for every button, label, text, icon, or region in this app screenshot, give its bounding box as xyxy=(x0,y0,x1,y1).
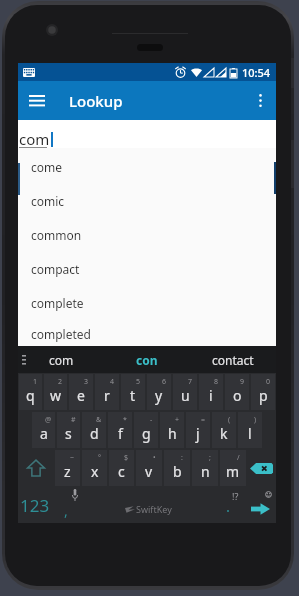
button[interactable]: contact xyxy=(190,346,276,373)
button[interactable]: 8 xyxy=(199,374,223,410)
staticText: 6 xyxy=(162,377,167,387)
staticText: !? xyxy=(232,490,239,502)
staticText: f xyxy=(118,424,123,443)
staticText: 9 xyxy=(240,377,245,387)
button[interactable]: 9 xyxy=(225,374,249,410)
button[interactable]: # xyxy=(57,412,80,448)
button[interactable]: $ xyxy=(109,450,134,486)
button[interactable]: 7 xyxy=(173,374,197,410)
button[interactable]: Backspace xyxy=(247,450,276,486)
staticText: compact xyxy=(31,261,80,277)
button[interactable]: common xyxy=(18,218,276,252)
staticText: 2 xyxy=(58,377,63,387)
staticText: come xyxy=(31,159,63,175)
staticText: con xyxy=(136,352,158,368)
button[interactable]: 123 xyxy=(18,488,62,523)
staticText: r xyxy=(104,386,110,405)
staticText: 3 xyxy=(84,377,89,387)
button[interactable]: con xyxy=(104,346,190,373)
staticText: t xyxy=(130,386,136,405)
staticText: v xyxy=(145,462,153,481)
staticText: c xyxy=(118,462,125,481)
button[interactable]: complete xyxy=(18,286,276,320)
button[interactable]: @ xyxy=(32,412,55,448)
staticText: k xyxy=(220,424,228,443)
staticText: contact xyxy=(212,352,254,368)
button[interactable]: 6 xyxy=(147,374,171,410)
staticText: p xyxy=(259,386,268,405)
staticText: com xyxy=(49,352,74,368)
button[interactable]: 5 xyxy=(121,374,145,410)
button[interactable]: comic xyxy=(18,184,276,218)
staticText: n xyxy=(201,462,210,481)
staticText: h xyxy=(168,424,177,443)
staticText: q xyxy=(26,386,35,405)
staticText: ~ xyxy=(70,453,75,463)
staticText: l xyxy=(248,424,252,443)
staticText: 1 xyxy=(33,377,38,387)
staticText: 0 xyxy=(266,377,271,387)
staticText: m xyxy=(226,462,240,481)
staticText: $ xyxy=(124,453,129,463)
button[interactable]: Punctuation xyxy=(214,488,248,523)
staticText: w xyxy=(50,386,62,405)
button[interactable]: 0 xyxy=(251,374,275,410)
button[interactable]: 1 xyxy=(19,374,42,410)
button[interactable]: & xyxy=(82,412,106,448)
button[interactable]: Keyboard menu xyxy=(18,346,29,373)
staticText: : xyxy=(181,453,183,463)
button[interactable]: 3 xyxy=(69,374,93,410)
staticText: 8 xyxy=(214,377,219,387)
staticText: 5 xyxy=(136,377,141,387)
staticText: # xyxy=(71,415,76,425)
button[interactable]: More options xyxy=(244,81,276,120)
staticText: e xyxy=(77,386,85,405)
staticText: y xyxy=(155,386,163,405)
button[interactable]: - xyxy=(134,412,158,448)
button[interactable]: + xyxy=(160,412,184,448)
button[interactable]: Space xyxy=(118,488,214,523)
staticText: x xyxy=(91,462,99,481)
button[interactable]: Comma and voice input xyxy=(62,488,118,523)
staticText: g xyxy=(142,424,151,443)
button[interactable]: ~ xyxy=(55,450,80,486)
button[interactable]: 4 xyxy=(95,374,119,410)
staticText: 10:54 xyxy=(242,65,271,80)
button[interactable]: : xyxy=(164,450,190,486)
staticText: , xyxy=(64,501,68,520)
button[interactable]: com xyxy=(18,346,104,373)
staticText: o xyxy=(233,386,242,405)
staticText: 7 xyxy=(188,377,193,387)
staticText: / xyxy=(237,453,240,463)
button[interactable]: completed xyxy=(18,320,276,348)
button[interactable]: ( xyxy=(212,412,236,448)
button[interactable]: Navigation menu xyxy=(18,81,56,120)
button[interactable]: / xyxy=(220,450,246,486)
button[interactable]: ) xyxy=(238,412,262,448)
staticText: comic xyxy=(31,193,65,209)
staticText: & xyxy=(96,415,102,425)
button[interactable]: ; xyxy=(192,450,218,486)
staticText: com xyxy=(19,129,50,149)
button[interactable]: * xyxy=(108,412,132,448)
staticText: = xyxy=(201,415,206,425)
button[interactable]: 2 xyxy=(44,374,67,410)
staticText: @ xyxy=(45,415,52,425)
staticText: d xyxy=(90,424,99,443)
button[interactable]: compact xyxy=(18,252,276,286)
staticText: 123 xyxy=(20,494,50,517)
button[interactable]: come xyxy=(18,150,276,184)
staticText: • xyxy=(153,453,156,463)
staticText: ; xyxy=(209,453,211,463)
button[interactable]: • xyxy=(136,450,162,486)
staticText: + xyxy=(175,415,180,425)
staticText: * xyxy=(123,415,127,425)
staticText: z xyxy=(64,462,71,481)
button[interactable]: = xyxy=(186,412,210,448)
staticText: ° xyxy=(98,453,101,463)
button[interactable]: Enter xyxy=(248,488,276,523)
button[interactable]: ° xyxy=(82,450,107,486)
button[interactable]: Shift xyxy=(18,450,54,486)
staticText: common xyxy=(31,227,82,243)
staticText: u xyxy=(181,386,190,405)
